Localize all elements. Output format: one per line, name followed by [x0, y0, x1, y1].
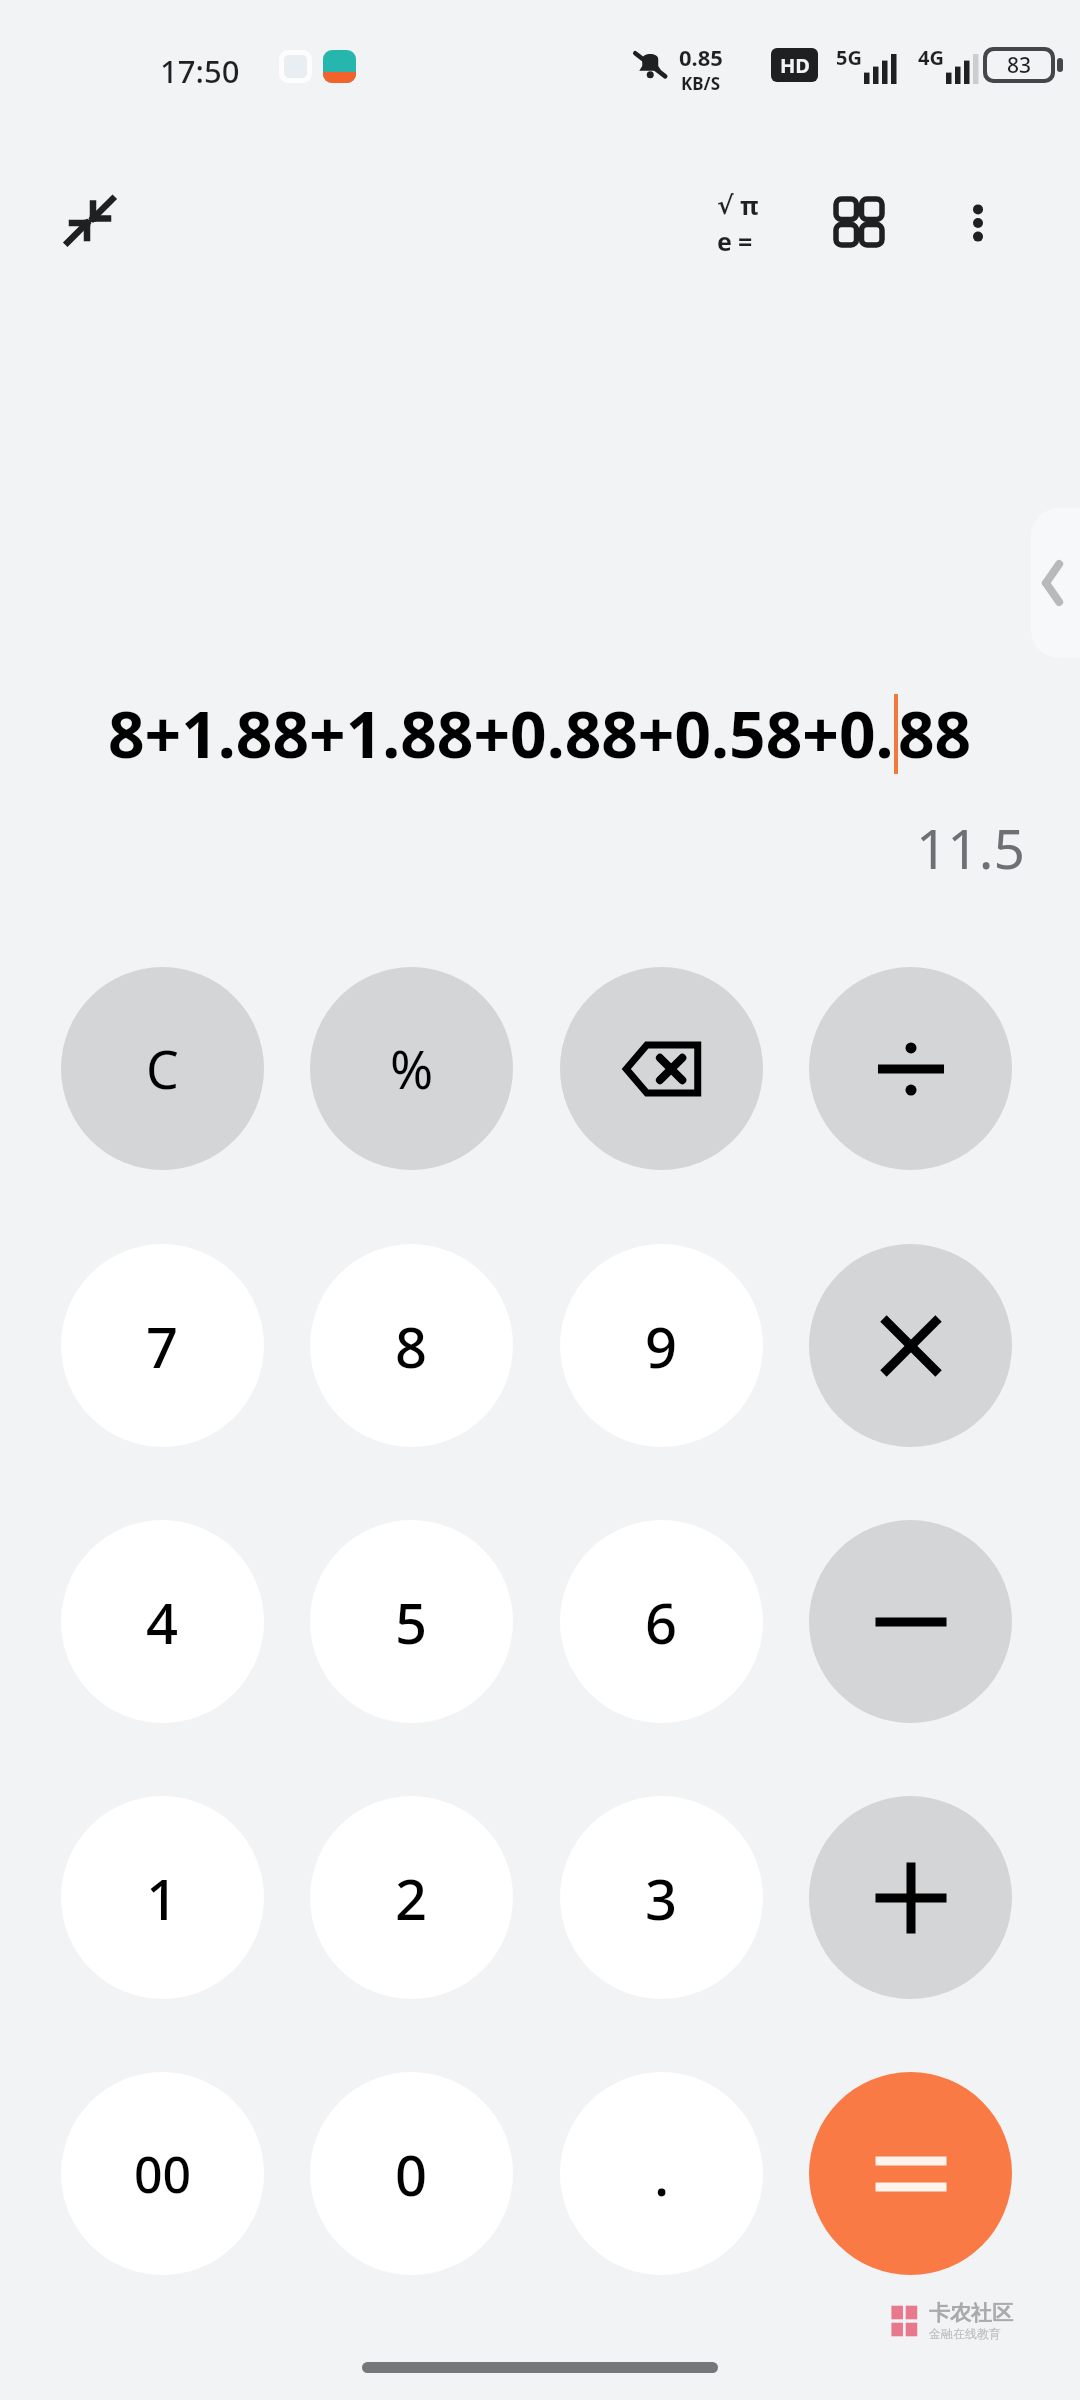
staticText: 7: [146, 1308, 179, 1384]
staticText: 11.5: [915, 810, 1025, 885]
button[interactable]: 8: [310, 1244, 513, 1447]
button[interactable]: More options: [930, 175, 1026, 271]
button[interactable]: Backspace: [560, 967, 763, 1170]
button[interactable]: Scientific: [690, 175, 786, 271]
button[interactable]: Collapse: [47, 177, 133, 263]
staticText: 0.85: [679, 42, 723, 72]
staticText: %: [390, 1033, 434, 1104]
staticText: 1: [146, 1860, 179, 1936]
staticText: 4: [146, 1584, 179, 1660]
staticText: 卡农社区: [929, 2300, 1013, 2326]
staticText: e: [717, 224, 732, 258]
staticText: 5: [395, 1584, 428, 1660]
staticText: .: [654, 2136, 670, 2212]
button[interactable]: 5: [310, 1520, 513, 1723]
staticText: 0: [395, 2136, 428, 2212]
staticText: 00: [134, 2140, 192, 2208]
button[interactable]: 4: [61, 1520, 264, 1723]
button[interactable]: C: [61, 967, 264, 1170]
staticText: 6: [645, 1584, 678, 1660]
button[interactable]: 1: [61, 1796, 264, 1999]
button[interactable]: 7: [61, 1244, 264, 1447]
staticText: 83: [1007, 51, 1032, 79]
button[interactable]: Multiply: [809, 1244, 1012, 1447]
button[interactable]: .: [560, 2072, 763, 2275]
staticText: 5G: [836, 44, 862, 71]
button[interactable]: Open panel: [1031, 508, 1080, 658]
button[interactable]: Subtract: [809, 1520, 1012, 1723]
staticText: C: [146, 1033, 179, 1104]
button[interactable]: 00: [61, 2072, 264, 2275]
staticText: 9: [645, 1308, 678, 1384]
button[interactable]: 3: [560, 1796, 763, 1999]
button[interactable]: 9: [560, 1244, 763, 1447]
staticText: HD: [780, 52, 810, 79]
button[interactable]: Equals: [809, 2072, 1012, 2275]
staticText: π: [740, 188, 759, 222]
staticText: 17:50: [160, 50, 240, 92]
staticText: =: [738, 224, 753, 258]
staticText: 4G: [918, 44, 944, 71]
button[interactable]: 0: [310, 2072, 513, 2275]
button[interactable]: 2: [310, 1796, 513, 1999]
staticText: KB/S: [681, 72, 721, 95]
staticText: 金融在线教育: [929, 2326, 1001, 2341]
staticText: 2: [395, 1860, 428, 1936]
staticText: √: [717, 191, 734, 220]
button[interactable]: 6: [560, 1520, 763, 1723]
staticText: 3: [645, 1860, 678, 1936]
button[interactable]: %: [310, 967, 513, 1170]
staticText: 8: [395, 1308, 428, 1384]
button[interactable]: Divide: [809, 967, 1012, 1170]
staticText: 8+1.88+1.88+0.88+0.58+0.: [108, 690, 894, 777]
button[interactable]: Add: [809, 1796, 1012, 1999]
staticText: 88: [898, 690, 972, 777]
button[interactable]: History: [812, 175, 908, 271]
